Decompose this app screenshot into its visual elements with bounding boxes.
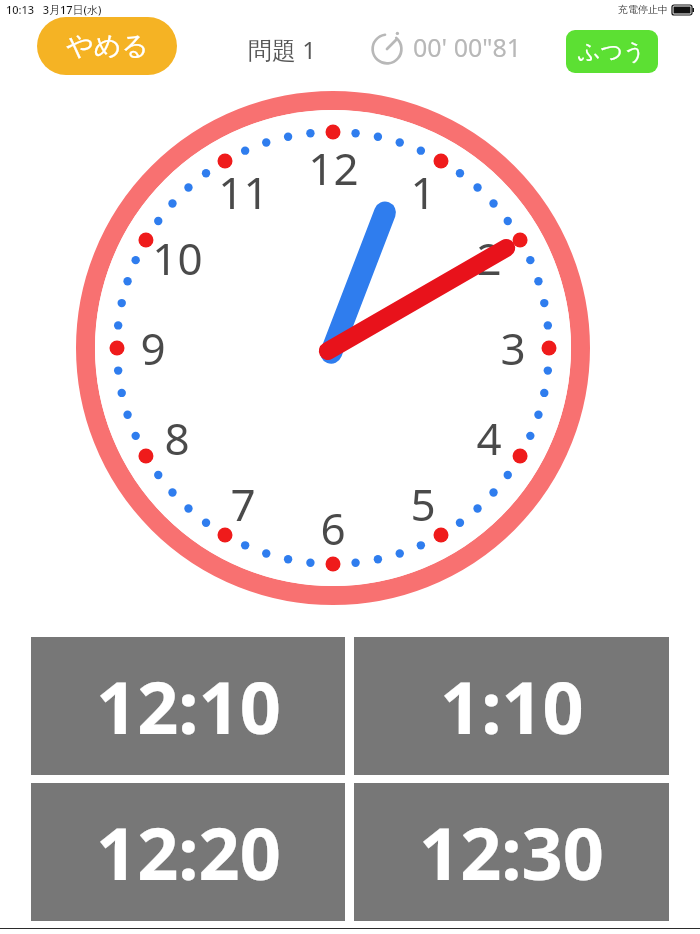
staticText: 00' 00"81 — [413, 30, 522, 64]
button[interactable]: 12:30 — [354, 783, 669, 921]
button[interactable]: 12:10 — [31, 637, 345, 775]
staticText: ふつう — [578, 38, 646, 66]
staticText: 11 — [218, 162, 269, 222]
staticText: 5 — [410, 474, 436, 534]
staticText: 7 — [230, 474, 256, 534]
staticText: 10 — [152, 228, 203, 288]
staticText: 8 — [164, 408, 190, 468]
button[interactable]: 12:20 — [31, 783, 345, 921]
staticText: 12 — [308, 138, 359, 198]
staticText: 1 — [410, 162, 436, 222]
staticText: 3 — [500, 318, 526, 378]
button[interactable]: やめる — [37, 17, 177, 75]
staticText: 12:20 — [96, 803, 281, 901]
staticText: 12:10 — [96, 657, 281, 755]
staticText: 充電停止中 — [618, 3, 668, 16]
staticText: やめる — [66, 29, 149, 63]
staticText: 12:30 — [419, 803, 604, 901]
staticText: 2 — [476, 228, 502, 288]
staticText: 6 — [320, 498, 346, 558]
staticText: 4 — [476, 408, 502, 468]
staticText: 10:13 3月17日(水) — [6, 2, 102, 17]
staticText: 9 — [140, 318, 166, 378]
button[interactable]: ふつう — [566, 30, 658, 73]
staticText: 1:10 — [440, 657, 584, 755]
button[interactable]: 1:10 — [354, 637, 669, 775]
staticText: 問題 1 — [248, 33, 316, 66]
